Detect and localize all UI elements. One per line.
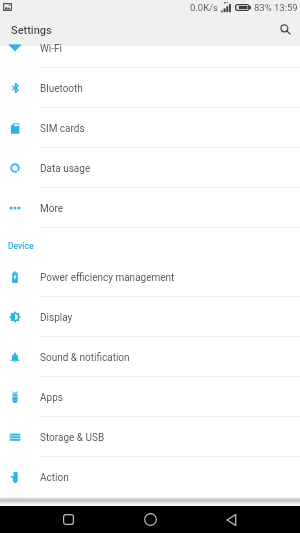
button[interactable]: Recents [55,506,82,533]
staticText: Data usage [40,163,91,175]
staticText: Settings [11,24,52,37]
staticText: Device [8,241,34,251]
staticText: Power efficiency management [40,272,175,284]
button[interactable]: Data usage [0,148,300,188]
staticText: 0.0K/s [190,2,218,13]
button[interactable]: SIM cards [0,108,300,148]
staticText: Sound & notification [40,352,130,364]
staticText: Storage & USB [40,432,105,444]
button[interactable]: Storage & USB [0,417,300,457]
staticText: Action [40,472,69,484]
staticText: Display [40,312,73,324]
staticText: SIM cards [40,123,85,135]
staticText: Wi-Fi [40,43,63,55]
button[interactable]: Power efficiency management [0,257,300,297]
button[interactable]: Display [0,297,300,337]
staticText: 83% 13:59 [254,2,298,13]
button[interactable]: Wi-Fi [0,28,300,68]
staticText: Bluetooth [40,83,83,95]
button[interactable]: Apps [0,377,300,417]
button[interactable]: Sound & notification [0,337,300,377]
button[interactable]: Action [0,457,300,497]
staticText: More [40,203,64,215]
button[interactable]: Back [218,506,245,533]
button[interactable]: Bluetooth [0,68,300,108]
button[interactable]: Home [137,506,164,533]
button[interactable]: Search [270,14,300,44]
button[interactable]: More [0,188,300,228]
staticText: Apps [40,392,63,404]
